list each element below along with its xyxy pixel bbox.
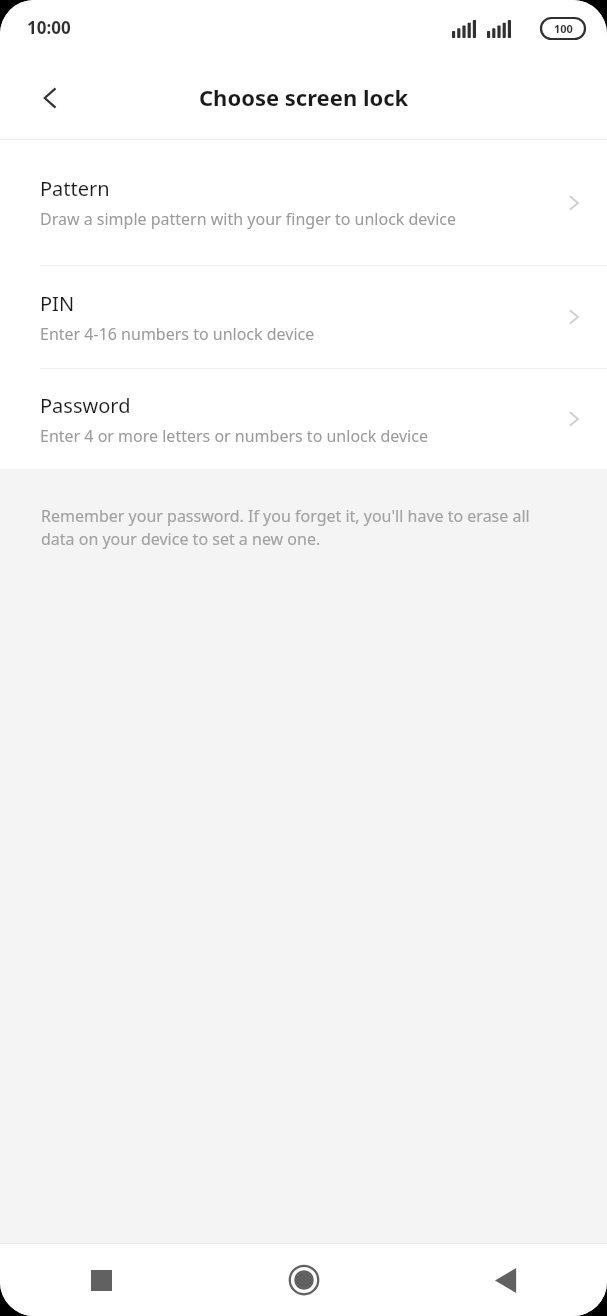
staticText: Enter 4 or more letters or numbers to un… — [40, 425, 428, 447]
staticText: Remember your password. If you forget it… — [41, 505, 567, 550]
button[interactable]: Pattern — [0, 140, 607, 265]
button[interactable]: PIN — [0, 266, 607, 368]
staticText: Enter 4-16 numbers to unlock device — [40, 323, 315, 345]
staticText: PIN — [40, 290, 75, 317]
staticText: 100 — [554, 21, 573, 36]
button[interactable]: Home — [203, 1244, 405, 1316]
staticText: 10:00 — [27, 16, 71, 39]
staticText: Draw a simple pattern with your finger t… — [40, 208, 457, 230]
staticText: Pattern — [40, 175, 110, 202]
button[interactable]: Recent apps — [0, 1244, 203, 1316]
staticText: Password — [40, 392, 131, 419]
staticText: Choose screen lock — [199, 82, 409, 112]
button[interactable]: Back — [405, 1244, 607, 1316]
button[interactable]: Password — [0, 369, 607, 469]
button[interactable]: Back — [22, 70, 78, 126]
